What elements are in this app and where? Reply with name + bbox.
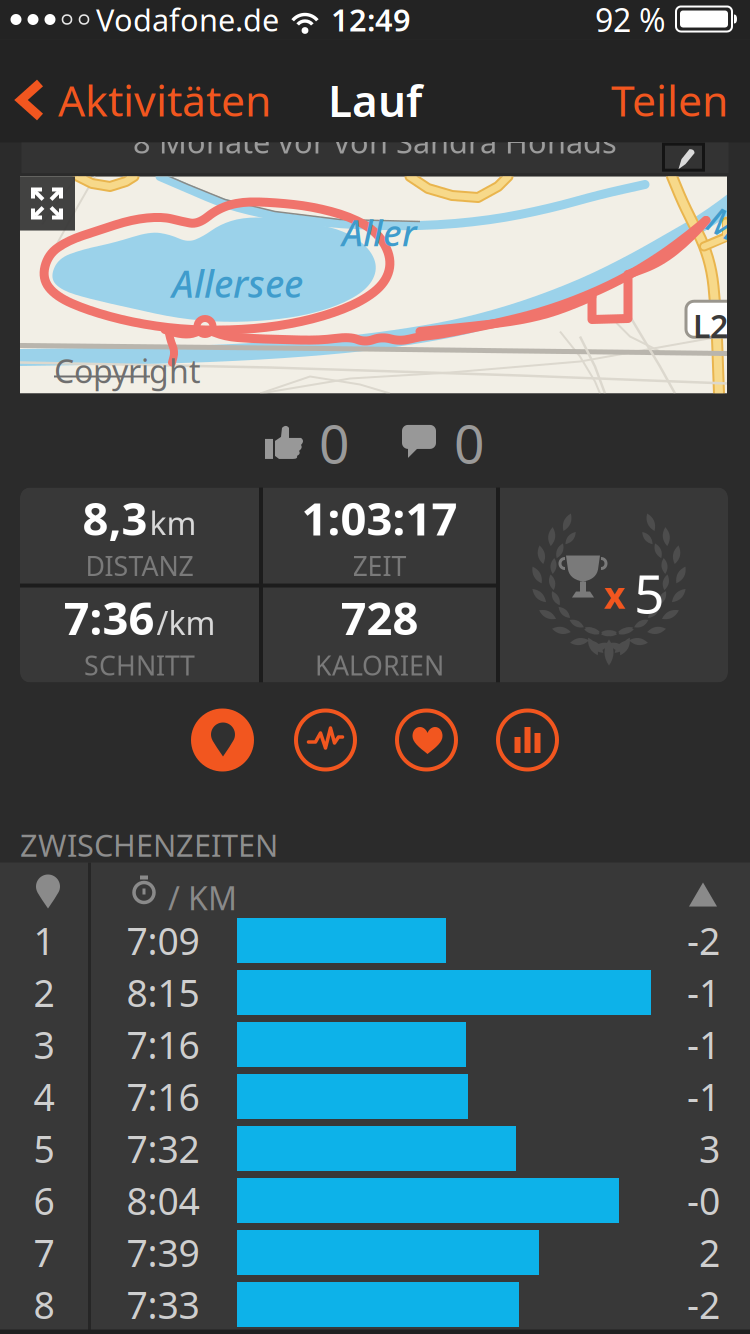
staticText: 7 [33,1228,54,1277]
staticText: Aller [342,208,417,256]
staticText: L29 [693,304,746,347]
button[interactable]: Aktivitäten [0,72,271,128]
staticText: -1 [687,968,720,1017]
button[interactable]: Herzfrequenz [397,710,456,769]
staticText: 3 [699,1124,720,1173]
button[interactable]: Kommentare [402,407,485,478]
staticText: 8 Monate vor von Sandra Honads [133,121,617,162]
staticText: x [604,569,626,619]
staticText: -2 [687,916,720,965]
staticText: 7:36 [63,587,154,647]
staticText: 7:16 [126,1072,199,1121]
staticText: 0 [454,407,485,478]
staticText: Allersee [172,258,303,308]
staticText: 7:32 [126,1124,199,1173]
staticText: -2 [687,1280,720,1329]
staticText: Mi [708,201,749,249]
button[interactable]: Gefällt mir [265,407,350,478]
staticText: -1 [687,1020,720,1069]
button[interactable]: Teilen [611,72,728,128]
staticText: 8:15 [126,968,199,1017]
staticText: 1:03:17 [301,488,457,548]
staticText: ZWISCHENZEITEN [20,824,278,865]
staticText: 4 [33,1072,54,1121]
staticText: 0 [319,407,350,478]
staticText: 2 [699,1228,720,1277]
staticText: KALORIEN [315,647,444,683]
staticText: 8,3 [82,488,147,548]
staticText: -0 [687,1176,720,1225]
staticText: 5 [634,557,665,628]
staticText: 92 % [595,0,666,41]
staticText: ZEIT [352,548,406,583]
staticText: Teilen [611,72,728,128]
button[interactable]: Vollbild [20,176,75,230]
staticText: Aktivitäten [58,72,271,128]
staticText: 5 [33,1124,54,1173]
staticText: 12:49 [331,0,411,40]
staticText: 7:16 [126,1020,199,1069]
staticText: Copyright [54,349,201,392]
staticText: Vodafone.de [96,0,279,40]
staticText: -1 [687,1072,720,1121]
staticText: 6 [33,1176,54,1225]
staticText: km [149,502,196,544]
staticText: Lauf [328,71,422,129]
button[interactable]: Karte [191,708,254,771]
staticText: 2 [33,968,54,1017]
staticText: 7:33 [126,1280,199,1329]
staticText: 7:09 [126,916,199,965]
staticText: SCHNITT [84,647,195,683]
staticText: 8 [33,1280,54,1329]
staticText: /km [156,601,215,644]
staticText: 8:04 [126,1176,199,1225]
button[interactable]: Statistik [498,710,557,769]
staticText: DISTANZ [85,548,193,583]
button[interactable]: Bearbeiten [663,144,703,170]
staticText: 1 [33,916,54,965]
staticText: / KM [168,876,237,919]
staticText: 728 [340,587,418,647]
button[interactable]: Tempo [296,710,355,769]
staticText: 7:39 [126,1228,199,1277]
staticText: 3 [33,1020,54,1069]
